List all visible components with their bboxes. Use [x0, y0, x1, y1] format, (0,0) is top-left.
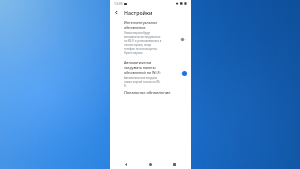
button[interactable]: Home: [146, 160, 155, 169]
button[interactable]: Автоматически загружать пакеты обновлени…: [110, 60, 191, 88]
staticText: Настройки: [124, 9, 153, 16]
staticText: Интеллектуальное обновление: [124, 20, 158, 30]
staticText: Новые версии будут автоматически загружа…: [124, 31, 162, 55]
button[interactable]: Recent apps: [170, 160, 179, 169]
button[interactable]: Back: [112, 8, 120, 16]
staticText: 13:05: [114, 1, 123, 6]
button[interactable]: Switch off: [180, 37, 187, 42]
staticText: Автоматически загружать пакеты обновлени…: [124, 60, 161, 75]
button[interactable]: Интеллектуальное обновление: [110, 20, 191, 55]
button[interactable]: Back: [121, 160, 130, 169]
staticText: Локальное обновление: [124, 90, 171, 95]
staticText: Автоматическая загрузка новых версий тол…: [124, 76, 162, 88]
button[interactable]: Локальное обновление: [124, 90, 205, 95]
button[interactable]: Switch on: [180, 71, 187, 76]
